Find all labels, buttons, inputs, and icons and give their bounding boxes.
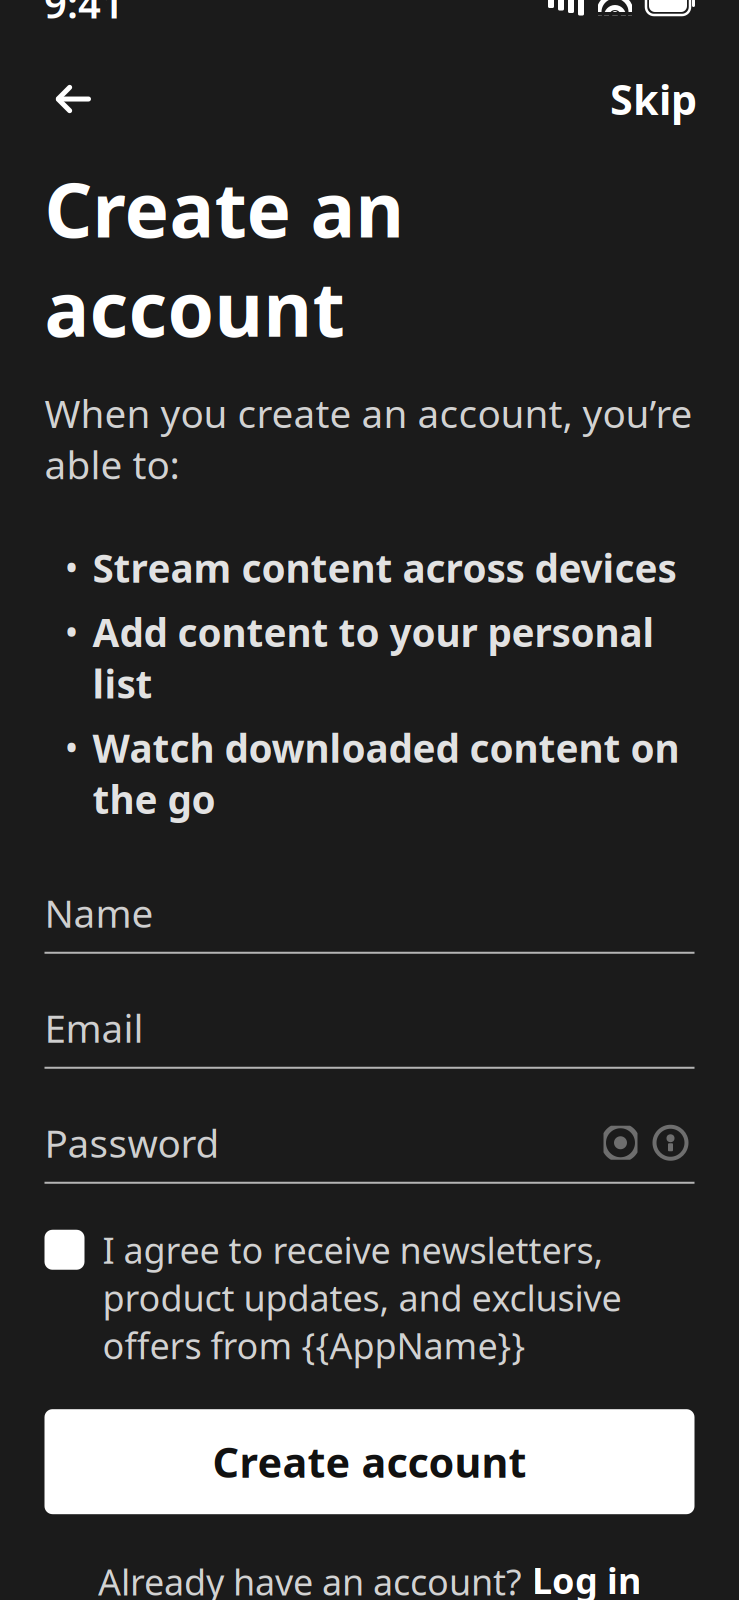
button[interactable]: Back xyxy=(42,69,102,129)
button[interactable]: Password manager xyxy=(646,1121,694,1165)
staticText: Already have an account? xyxy=(98,1558,522,1600)
button[interactable]: Skip xyxy=(610,69,697,129)
staticText: • xyxy=(64,722,78,772)
staticText: Create account xyxy=(212,1434,526,1489)
staticText: 9:41 xyxy=(44,0,124,30)
staticText: Skip xyxy=(610,72,697,126)
button[interactable]: Show password xyxy=(594,1121,646,1165)
staticText: • xyxy=(64,606,78,656)
button[interactable]: Create account xyxy=(44,1409,694,1514)
button[interactable]: I agree to receive newsletters, product … xyxy=(0,1184,738,1369)
staticText: Password xyxy=(44,1117,219,1168)
staticText: • xyxy=(64,542,78,592)
staticText: When you create an account, you’re able … xyxy=(44,387,692,490)
button[interactable]: Log in xyxy=(532,1556,641,1600)
staticText: Watch downloaded content on the go xyxy=(92,722,679,825)
staticText: I agree to receive newsletters, product … xyxy=(102,1226,621,1369)
staticText: Create an account xyxy=(44,159,404,357)
staticText: Email xyxy=(44,1002,143,1053)
staticText: Name xyxy=(44,887,153,938)
staticText: Add content to your personal list xyxy=(92,606,654,709)
staticText: Log in xyxy=(532,1556,641,1600)
staticText: Stream content across devices xyxy=(92,542,676,593)
